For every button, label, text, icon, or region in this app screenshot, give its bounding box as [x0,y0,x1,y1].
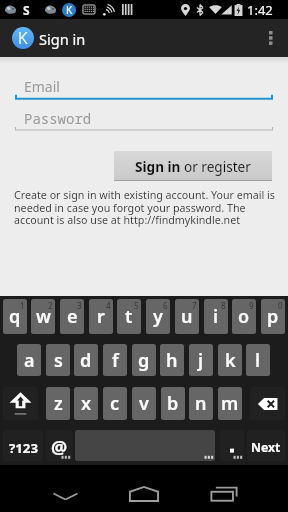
staticText: ?123 [9,439,38,457]
staticText: Create or sign in with existing account.… [14,188,278,227]
staticText: 2 [48,300,53,311]
button[interactable]: z [46,387,70,420]
staticText: j [198,348,204,373]
staticText: @ [51,435,68,460]
button[interactable]: c [103,387,127,420]
button[interactable]: l [246,344,270,376]
button[interactable]: k [218,344,242,376]
button[interactable]: t [117,299,141,334]
button[interactable]: Email [15,76,273,100]
staticText: u [181,304,193,329]
button[interactable]: s [46,344,70,376]
button[interactable]: n [189,387,213,420]
button[interactable]: q [3,299,27,334]
button[interactable]: j [189,344,213,376]
button[interactable]: a [17,344,41,376]
button[interactable]: i [204,299,228,334]
button[interactable]: v [132,387,156,420]
button[interactable]: Recents [200,474,248,512]
staticText: n [195,391,207,416]
button[interactable]: Next [247,430,285,461]
staticText: Password [24,109,92,128]
staticText: m [221,391,239,416]
staticText: o [238,304,250,329]
staticText: K [66,3,73,17]
staticText: 7 [192,300,197,311]
staticText: d [80,348,92,373]
button[interactable]: Backspace [250,387,285,420]
button[interactable]: m [218,387,242,420]
button[interactable]: @ [46,430,72,461]
button[interactable]: r [89,299,113,334]
button[interactable]: d [74,344,98,376]
staticText: k [225,348,236,373]
staticText: p [267,304,279,329]
button[interactable]: Sign in or register [114,151,272,181]
button[interactable]: g [132,344,156,376]
button[interactable]: x [74,387,98,420]
button[interactable]: u [175,299,199,334]
staticText: 1:42 [247,1,273,19]
staticText: Sign in or register [135,157,251,176]
staticText: r [97,304,105,329]
staticText: 0 [278,300,283,311]
staticText: c [110,391,120,416]
button[interactable]: p [261,299,285,334]
button[interactable]: y [146,299,170,334]
button[interactable]: Password [15,108,273,131]
staticText: l [255,348,261,373]
staticText: a [24,348,35,373]
staticText: i [213,304,219,329]
button[interactable]: Back [41,478,89,512]
button[interactable]: f [103,344,127,376]
staticText: K [18,27,28,49]
button[interactable]: ?123 [3,430,43,461]
staticText: 4 [106,300,111,311]
staticText: x [81,391,92,416]
button[interactable]: w [31,299,55,334]
staticText: h [166,348,178,373]
button[interactable]: o [232,299,256,334]
button[interactable]: b [161,387,185,420]
staticText: Sign in [39,29,86,49]
staticText: b [167,391,179,416]
staticText: w [36,304,51,329]
button[interactable]: More options [254,19,288,57]
staticText: Next [251,439,281,456]
staticText: v [139,391,149,416]
staticText: 9 [249,300,254,311]
button[interactable]: h [160,344,184,376]
staticText: Email [24,77,60,96]
staticText: 8 [221,300,226,311]
staticText: z [54,391,63,416]
staticText: e [67,304,78,329]
staticText: 6 [163,300,168,311]
button[interactable]: Shift [3,387,38,420]
staticText: S [23,2,30,18]
button[interactable]: Period [220,430,244,461]
staticText: q [9,304,21,329]
staticText: 3 [77,300,82,311]
button[interactable]: e [60,299,84,334]
button[interactable]: Home [120,474,168,512]
staticText: 1 [20,300,25,311]
button[interactable]: Space [75,430,215,461]
staticText: g [138,348,150,373]
staticText: f [112,348,119,373]
staticText: s [54,348,63,373]
staticText: y [153,304,163,329]
staticText: 5 [134,300,139,311]
staticText: t [125,304,133,329]
